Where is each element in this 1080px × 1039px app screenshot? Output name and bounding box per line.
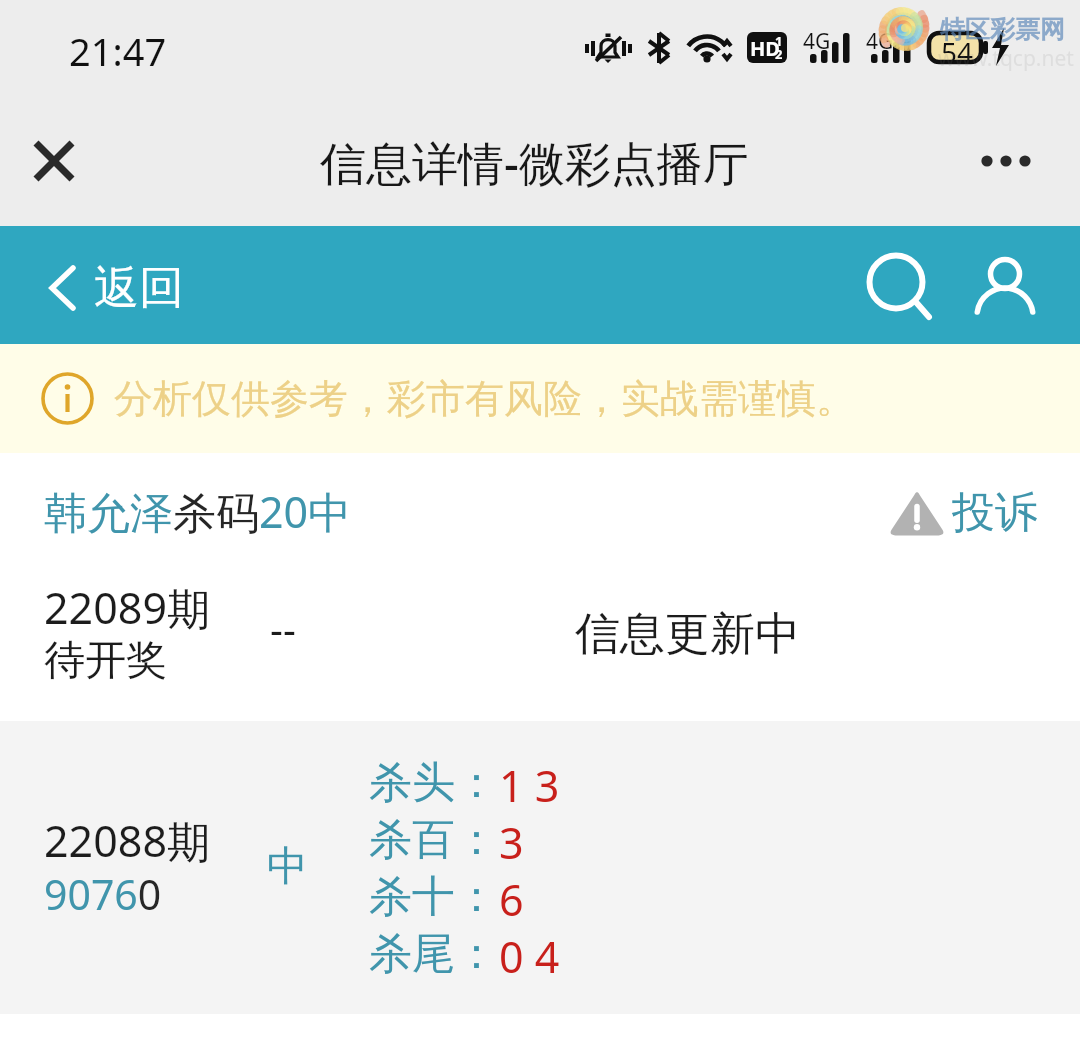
staticText: 返回 (94, 260, 184, 316)
button[interactable]: Close (18, 125, 90, 197)
staticText: 杀头： (369, 756, 498, 810)
staticText: 杀十： (369, 870, 498, 924)
staticText: 1 3 (499, 756, 560, 815)
staticText: HD (750, 35, 780, 62)
staticText: 投诉 (952, 486, 1038, 540)
staticText: -- (270, 601, 296, 655)
button[interactable] (0, 453, 1080, 721)
button[interactable]: 返回 (46, 260, 184, 316)
staticText: 4G (866, 27, 894, 56)
staticText: 54 (941, 33, 974, 71)
staticText: 22088期 (44, 811, 210, 870)
button[interactable]: Search (860, 246, 942, 328)
staticText: 特区彩票网 (940, 14, 1065, 45)
staticText: 2 (775, 45, 783, 63)
staticText: 21:47 (69, 25, 167, 77)
staticText: 90760 (44, 866, 162, 922)
staticText: 韩允泽杀码20中 (44, 482, 352, 541)
button[interactable] (0, 721, 1080, 1014)
staticText: 信息更新中 (575, 606, 800, 663)
staticText: 信息详情-微彩点播厅 (320, 131, 749, 194)
staticText: 1 (775, 32, 783, 50)
staticText: 0 4 (499, 927, 560, 986)
staticText: 杀尾： (369, 927, 498, 981)
staticText: 4G (803, 27, 831, 56)
staticText: 分析仅供参考，彩市有风险，实战需谨慎。 (114, 374, 855, 423)
button[interactable]: More options (970, 136, 1034, 186)
staticText: 待开奖 (44, 635, 167, 687)
staticText: www.tqcp.net (938, 44, 1074, 73)
staticText: 3 (499, 813, 524, 872)
button[interactable]: 投诉 (888, 486, 1038, 540)
staticText: 中 (267, 841, 308, 893)
staticText: 22089期 (44, 578, 210, 637)
button[interactable]: Profile (965, 249, 1047, 331)
staticText: 6 (499, 870, 524, 929)
staticText: 杀百： (369, 813, 498, 867)
